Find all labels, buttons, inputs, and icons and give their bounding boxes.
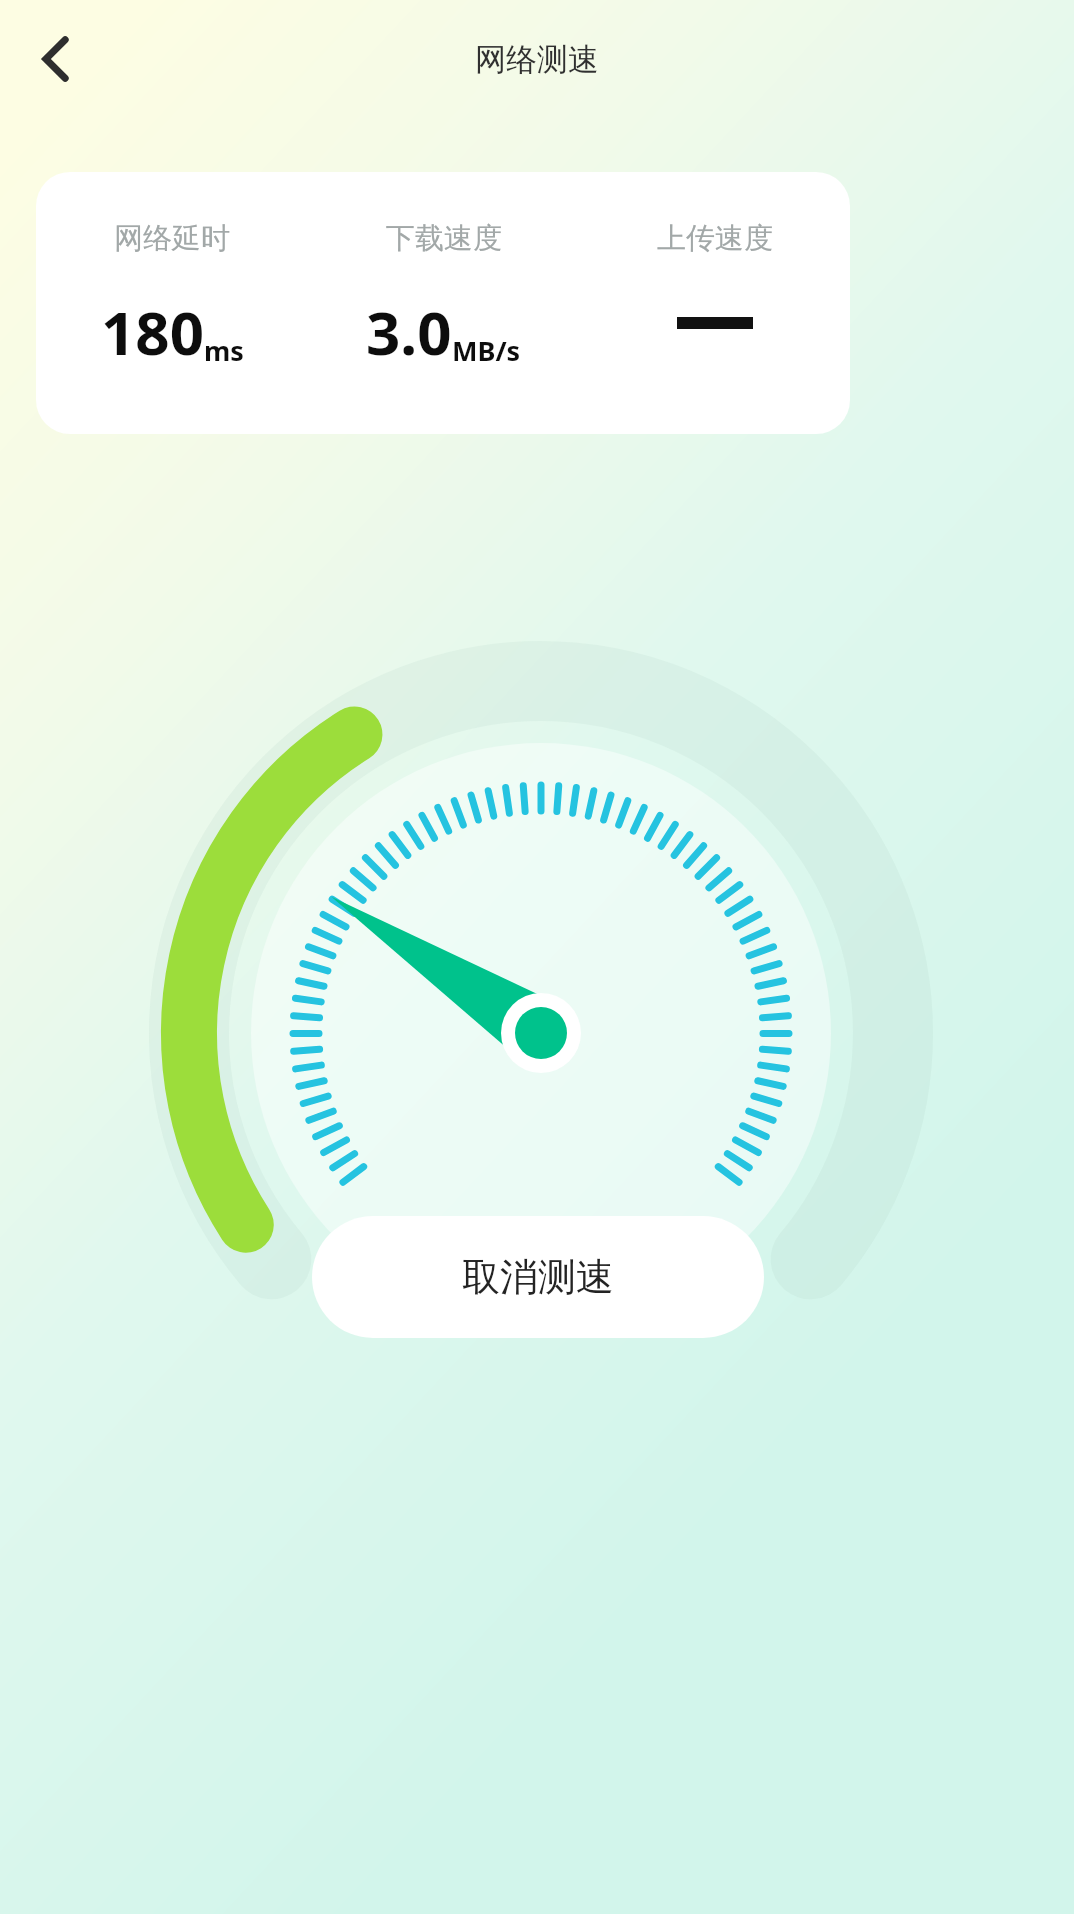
staticText: 3.0 (366, 291, 452, 373)
staticText: MB/s (452, 332, 521, 369)
staticText: 下载速度 (386, 220, 502, 257)
staticText: 上传速度 (657, 220, 773, 257)
staticText: ms (204, 332, 244, 369)
button[interactable]: Back (12, 15, 100, 103)
staticText: 网络测速 (475, 40, 599, 79)
staticText: 网络延时 (114, 220, 230, 257)
staticText: 取消测速 (462, 1253, 614, 1301)
button[interactable]: 取消测速 (312, 1216, 764, 1338)
staticText: 180 (101, 291, 204, 373)
